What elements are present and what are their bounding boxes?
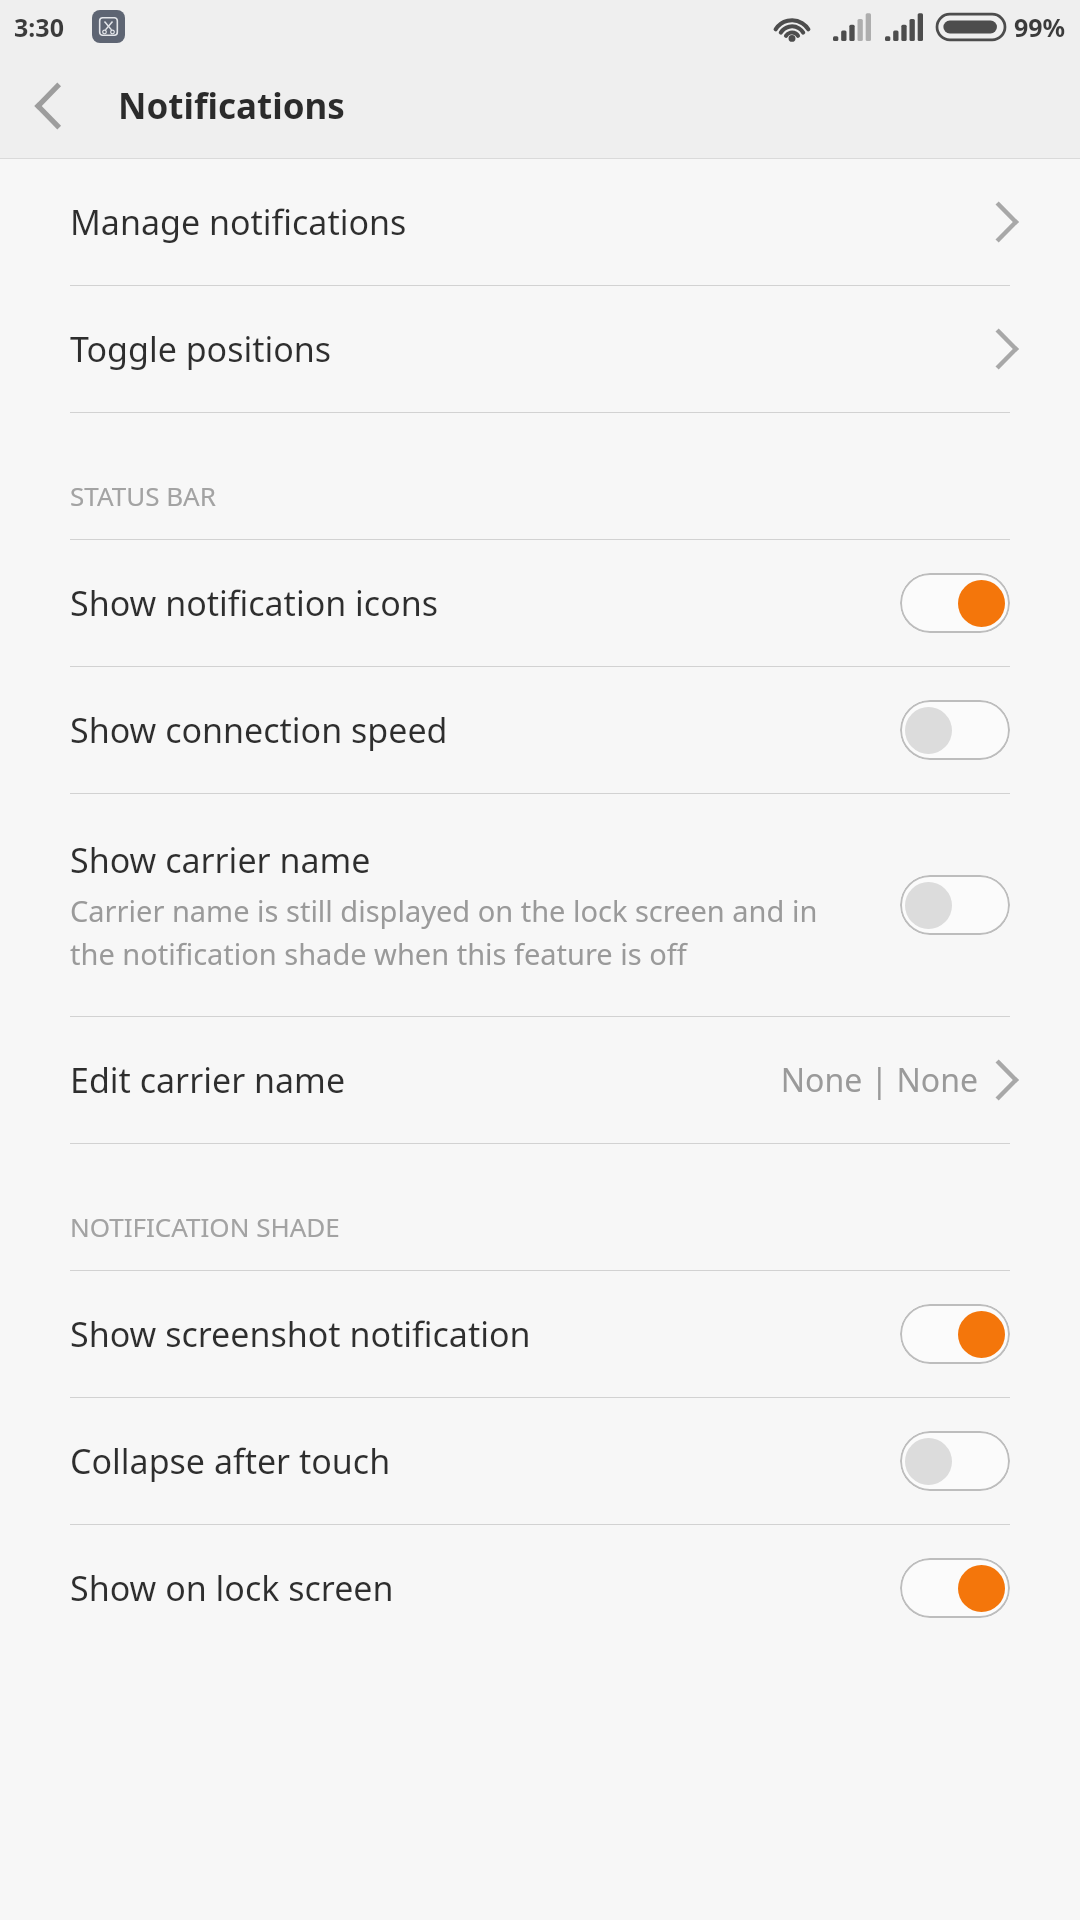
staticText: Show on lock screen xyxy=(70,1565,394,1611)
staticText: Show connection speed xyxy=(70,707,448,753)
staticText: Show notification icons xyxy=(70,580,439,626)
button[interactable]: Show connection speed xyxy=(0,667,1080,793)
button[interactable]: Show notification icons xyxy=(0,540,1080,666)
button[interactable]: Back xyxy=(0,58,96,154)
staticText: 99% xyxy=(1014,10,1066,44)
button[interactable]: Show on lock screen xyxy=(0,1525,1080,1651)
staticText: NOTIFICATION SHADE xyxy=(70,1209,340,1244)
button[interactable]: Off xyxy=(900,1431,1010,1491)
button[interactable]: On xyxy=(900,573,1010,633)
button[interactable]: Manage notifications xyxy=(0,159,1080,285)
button[interactable]: Show carrier name xyxy=(0,794,1080,1016)
staticText: None | None xyxy=(780,1058,978,1102)
staticText: Collapse after touch xyxy=(70,1438,391,1484)
staticText: Show carrier name xyxy=(70,837,371,883)
button[interactable]: Show screenshot notification xyxy=(0,1271,1080,1397)
staticText: 3:30 xyxy=(14,10,64,44)
staticText: STATUS BAR xyxy=(70,478,216,513)
button[interactable]: Off xyxy=(900,875,1010,935)
staticText: Toggle positions xyxy=(70,326,332,372)
button[interactable]: On xyxy=(900,1304,1010,1364)
button[interactable]: Off xyxy=(900,700,1010,760)
button[interactable]: Toggle positions xyxy=(0,286,1080,412)
staticText: Notifications xyxy=(118,82,345,130)
staticText: Edit carrier name xyxy=(70,1057,346,1103)
staticText: Carrier name is still displayed on the l… xyxy=(70,891,864,973)
staticText: Manage notifications xyxy=(70,199,407,245)
staticText: Show screenshot notification xyxy=(70,1311,531,1357)
button[interactable]: Edit carrier name xyxy=(0,1017,1080,1143)
button[interactable]: Collapse after touch xyxy=(0,1398,1080,1524)
button[interactable]: On xyxy=(900,1558,1010,1618)
